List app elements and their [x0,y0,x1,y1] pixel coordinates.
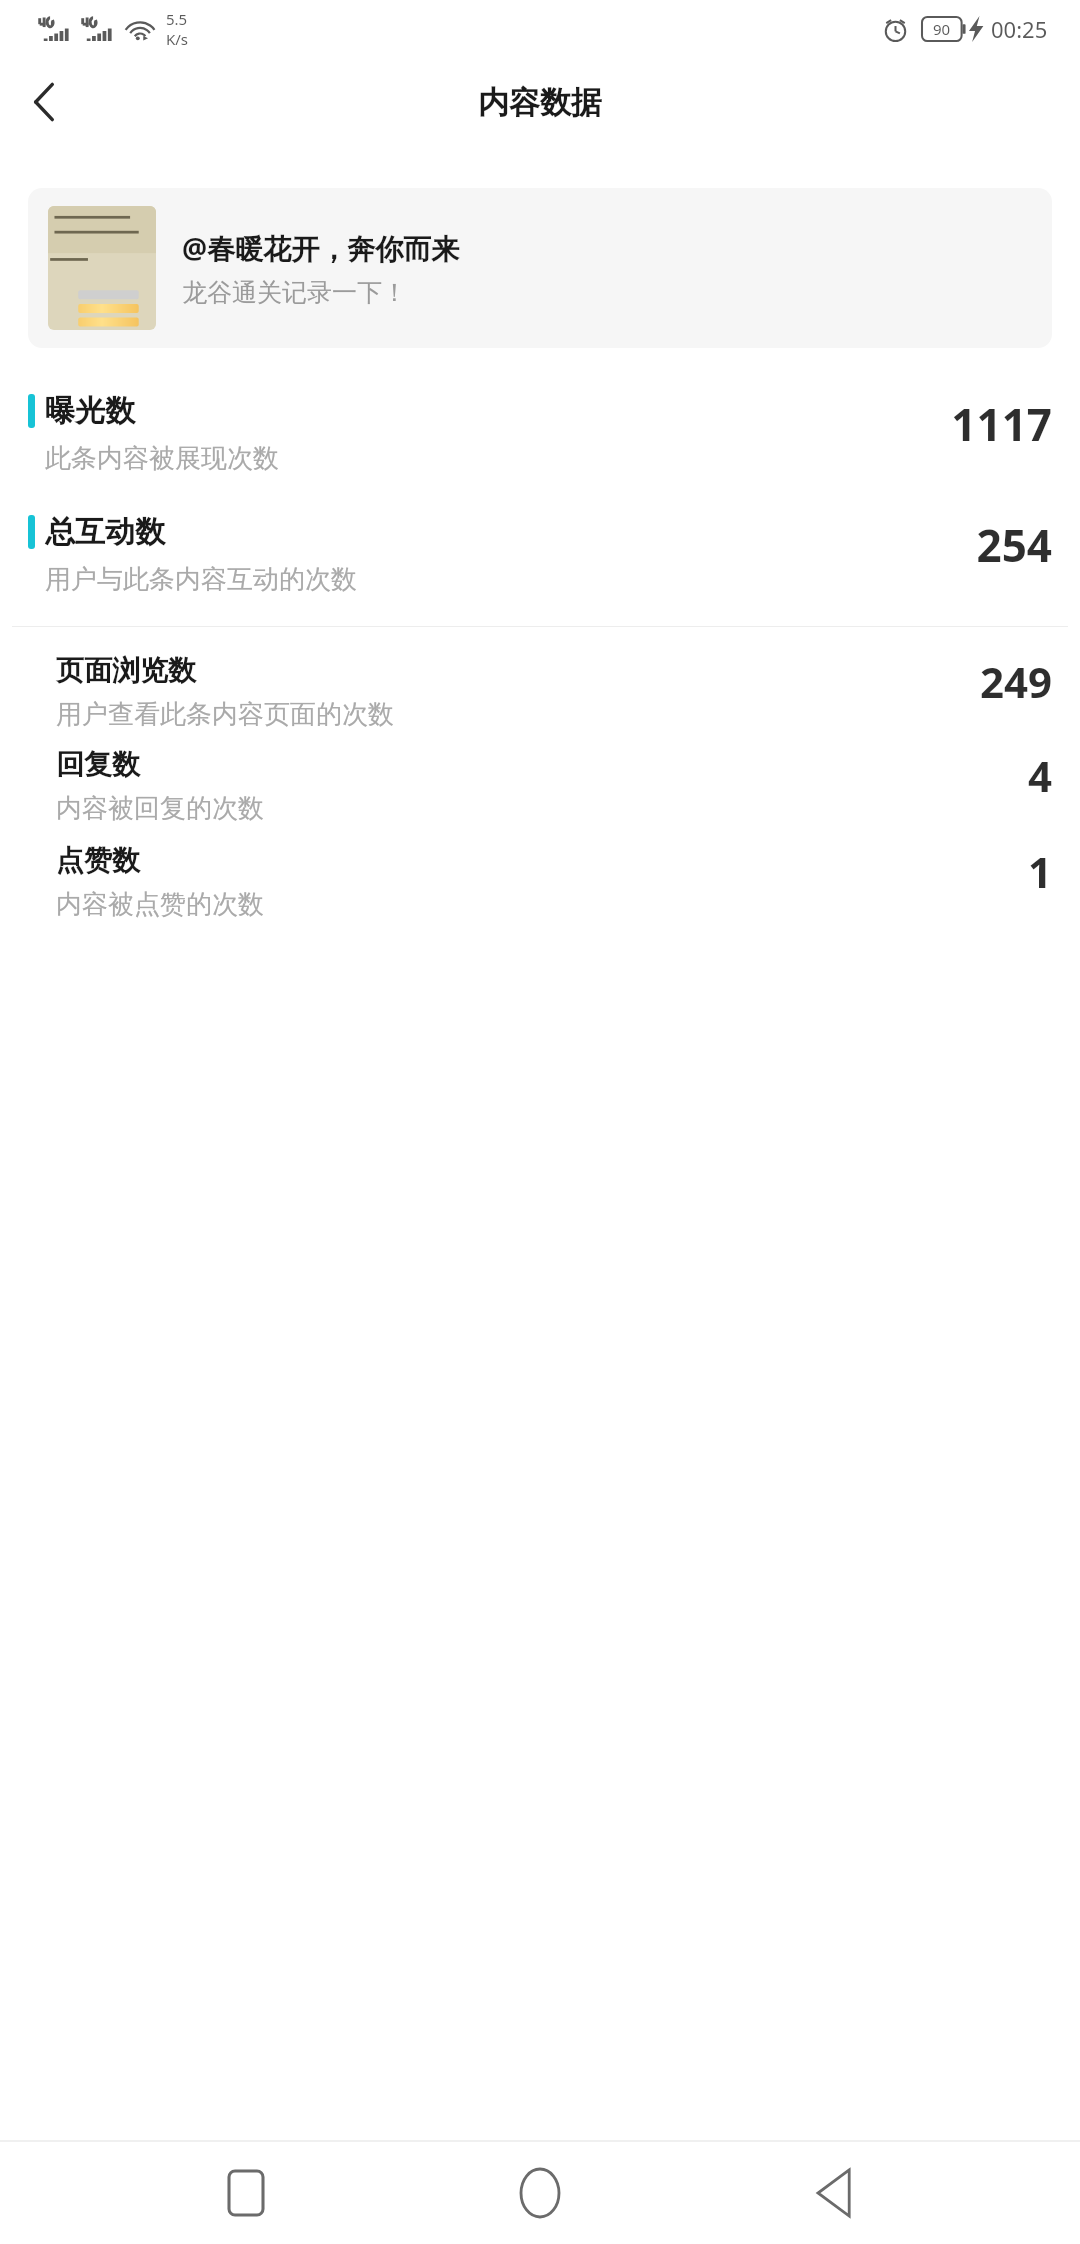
staticText: 回复数 [56,747,140,782]
staticText: 254 [976,515,1052,575]
staticText: 5.5 [166,9,188,29]
staticText: 用户查看此条内容页面的次数 [56,698,394,731]
button[interactable]: @春暖花开，奔你而来 [28,188,1052,348]
staticText: 1117 [951,394,1052,454]
staticText: 90 [933,19,951,39]
staticText: 用户与此条内容互动的次数 [45,563,357,596]
staticText: 曝光数 [45,392,135,430]
button[interactable]: 返回 [786,2145,882,2241]
staticText: 内容数据 [478,83,602,122]
staticText: 页面浏览数 [56,653,196,688]
staticText: 内容被点赞的次数 [56,888,264,921]
button[interactable]: 最近任务 [198,2145,294,2241]
button[interactable]: 曝光数 [0,392,1080,475]
staticText: K/s [166,29,189,49]
button[interactable]: 页面浏览数 [0,653,1080,731]
staticText: 点赞数 [56,843,140,878]
staticText: 内容被回复的次数 [56,792,264,825]
button[interactable]: 返回 [8,66,80,138]
staticText: 总互动数 [45,513,165,551]
button[interactable]: 点赞数 [0,843,1080,921]
staticText: 龙谷通关记录一下！ [182,277,407,308]
button[interactable]: 主页 [492,2145,588,2241]
button[interactable]: 总互动数 [0,513,1080,596]
staticText: 00:25 [991,14,1048,44]
staticText: 249 [979,653,1052,710]
staticText: 4 [1027,747,1052,804]
staticText: @春暖花开，奔你而来 [182,229,460,267]
button[interactable]: 回复数 [0,747,1080,825]
staticText: 1 [1027,843,1052,900]
staticText: 此条内容被展现次数 [45,442,279,475]
